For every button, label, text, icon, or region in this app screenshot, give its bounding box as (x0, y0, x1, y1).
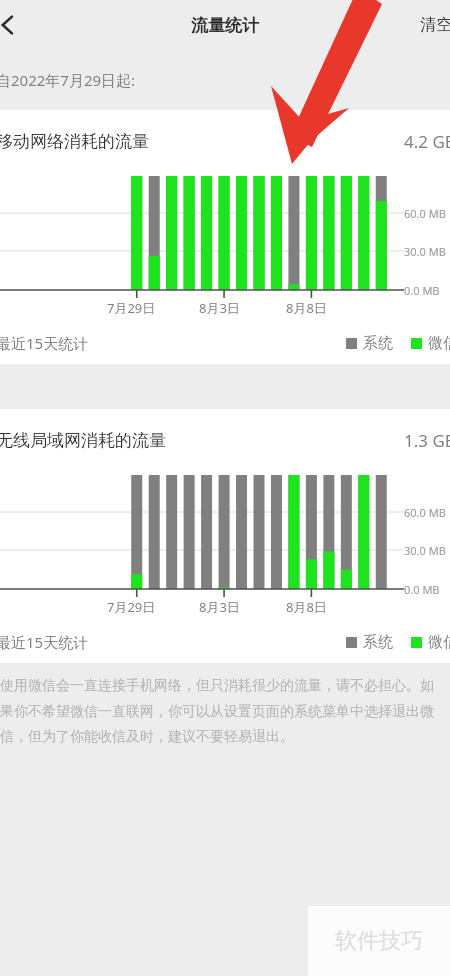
staticText: 无线局域网消耗的流量 (0, 430, 166, 451)
staticText: 0.0 MB (404, 582, 440, 597)
staticText: 1.3 GB (404, 429, 450, 452)
staticText: 30.0 MB (404, 543, 446, 558)
staticText: 7月29日 (107, 299, 156, 317)
button[interactable]: 移动网络消耗的流量 (0, 110, 450, 172)
staticText: 最近15天统计 (0, 333, 89, 353)
staticText: 7月29日 (107, 598, 156, 616)
staticText: 流量统计 (191, 15, 259, 36)
staticText: 微信 (428, 633, 450, 652)
staticText: 移动网络消耗的流量 (0, 131, 149, 152)
staticText: 8月8日 (286, 299, 327, 317)
staticText: 系统 (363, 334, 393, 353)
staticText: 微信 (428, 334, 450, 353)
staticText: 60.0 MB (404, 206, 446, 221)
staticText: 8月3日 (199, 299, 240, 317)
staticText: 软件技巧 (335, 927, 423, 955)
staticText: 30.0 MB (404, 244, 446, 259)
button[interactable]: Back (0, 3, 30, 47)
staticText: 0.0 MB (404, 283, 440, 298)
staticText: 自2022年7月29日起: (0, 70, 136, 90)
button[interactable]: 无线局域网消耗的流量 (0, 409, 450, 471)
staticText: 清空 (420, 15, 450, 35)
staticText: 最近15天统计 (0, 632, 89, 652)
staticText: 4.2 GB (404, 130, 450, 153)
staticText: 系统 (363, 633, 393, 652)
staticText: 60.0 MB (404, 505, 446, 520)
staticText: 8月8日 (286, 598, 327, 616)
staticText: 使用微信会一直连接手机网络，但只消耗很少的流量，请不必担心。如果你不希望微信一直… (0, 677, 446, 745)
button[interactable]: 清空 (408, 3, 450, 47)
staticText: 8月3日 (199, 598, 240, 616)
